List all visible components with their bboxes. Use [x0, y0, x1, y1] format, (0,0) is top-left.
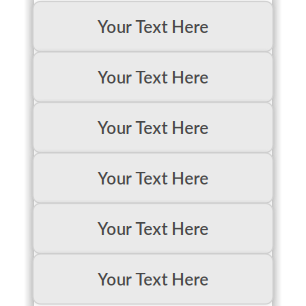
staticText: Your Text Here [97, 67, 208, 87]
button[interactable]: Your Text Here [33, 203, 273, 253]
button[interactable]: Your Text Here [33, 1, 273, 51]
staticText: Your Text Here [97, 117, 208, 138]
staticText: Your Text Here [97, 218, 208, 239]
button[interactable]: Your Text Here [33, 52, 273, 102]
staticText: Your Text Here [97, 269, 208, 289]
button[interactable]: Your Text Here [33, 153, 273, 203]
button[interactable]: Your Text Here [33, 254, 273, 304]
staticText: Your Text Here [97, 168, 208, 188]
button[interactable]: Your Text Here [33, 102, 273, 152]
staticText: Your Text Here [97, 16, 208, 37]
